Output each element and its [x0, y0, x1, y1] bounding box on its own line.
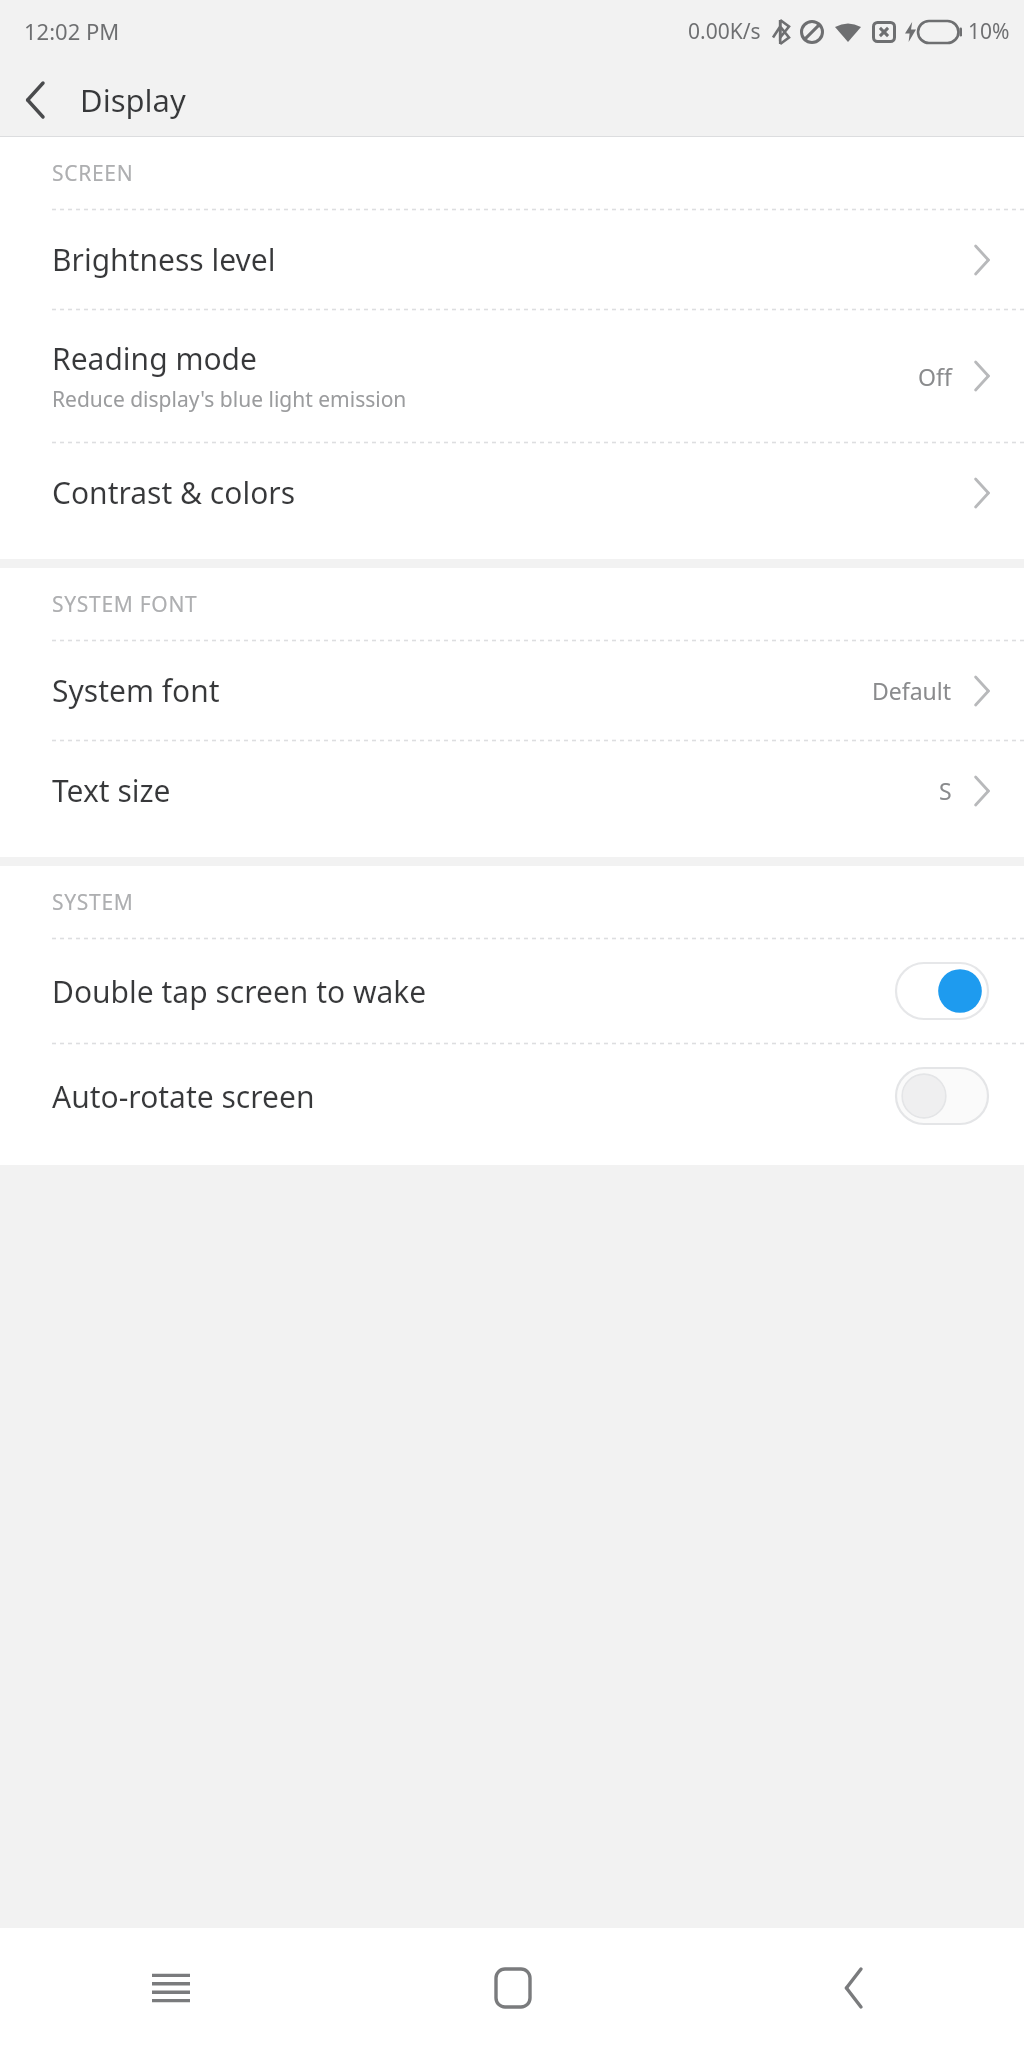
staticText: System font — [52, 670, 220, 711]
staticText: Reduce display's blue light emission — [52, 385, 407, 414]
staticText: Off — [918, 361, 952, 392]
button[interactable]: Reading mode — [0, 310, 1024, 442]
staticText: 10% — [968, 17, 1010, 46]
button[interactable]: Double tap screen to wake — [0, 939, 1024, 1043]
staticText: Double tap screen to wake — [52, 971, 896, 1012]
staticText: SCREEN — [52, 159, 134, 188]
staticText: Text size — [52, 770, 171, 811]
staticText: Display — [80, 79, 186, 121]
staticText: Brightness level — [52, 239, 276, 280]
button[interactable]: Brightness level — [0, 210, 1024, 309]
button[interactable]: Text size — [0, 741, 1024, 840]
button[interactable]: System font — [0, 641, 1024, 740]
staticText: S — [939, 775, 952, 806]
button[interactable]: Auto-rotate screen — [0, 1044, 1024, 1148]
staticText: 12:02 PM — [24, 16, 120, 46]
staticText: SYSTEM — [52, 888, 134, 917]
staticText: Default — [872, 675, 952, 706]
button[interactable]: Contrast & colors — [0, 443, 1024, 542]
staticText: Reading mode — [52, 338, 257, 379]
staticText: Contrast & colors — [52, 472, 296, 513]
staticText: Auto-rotate screen — [52, 1076, 896, 1117]
staticText: 0.00K/s — [688, 17, 761, 46]
button[interactable]: Recent apps — [0, 1928, 342, 2048]
button[interactable]: Back — [0, 64, 72, 136]
button[interactable]: Home — [342, 1928, 683, 2048]
staticText: SYSTEM FONT — [52, 590, 198, 619]
button[interactable]: Back — [683, 1928, 1024, 2048]
